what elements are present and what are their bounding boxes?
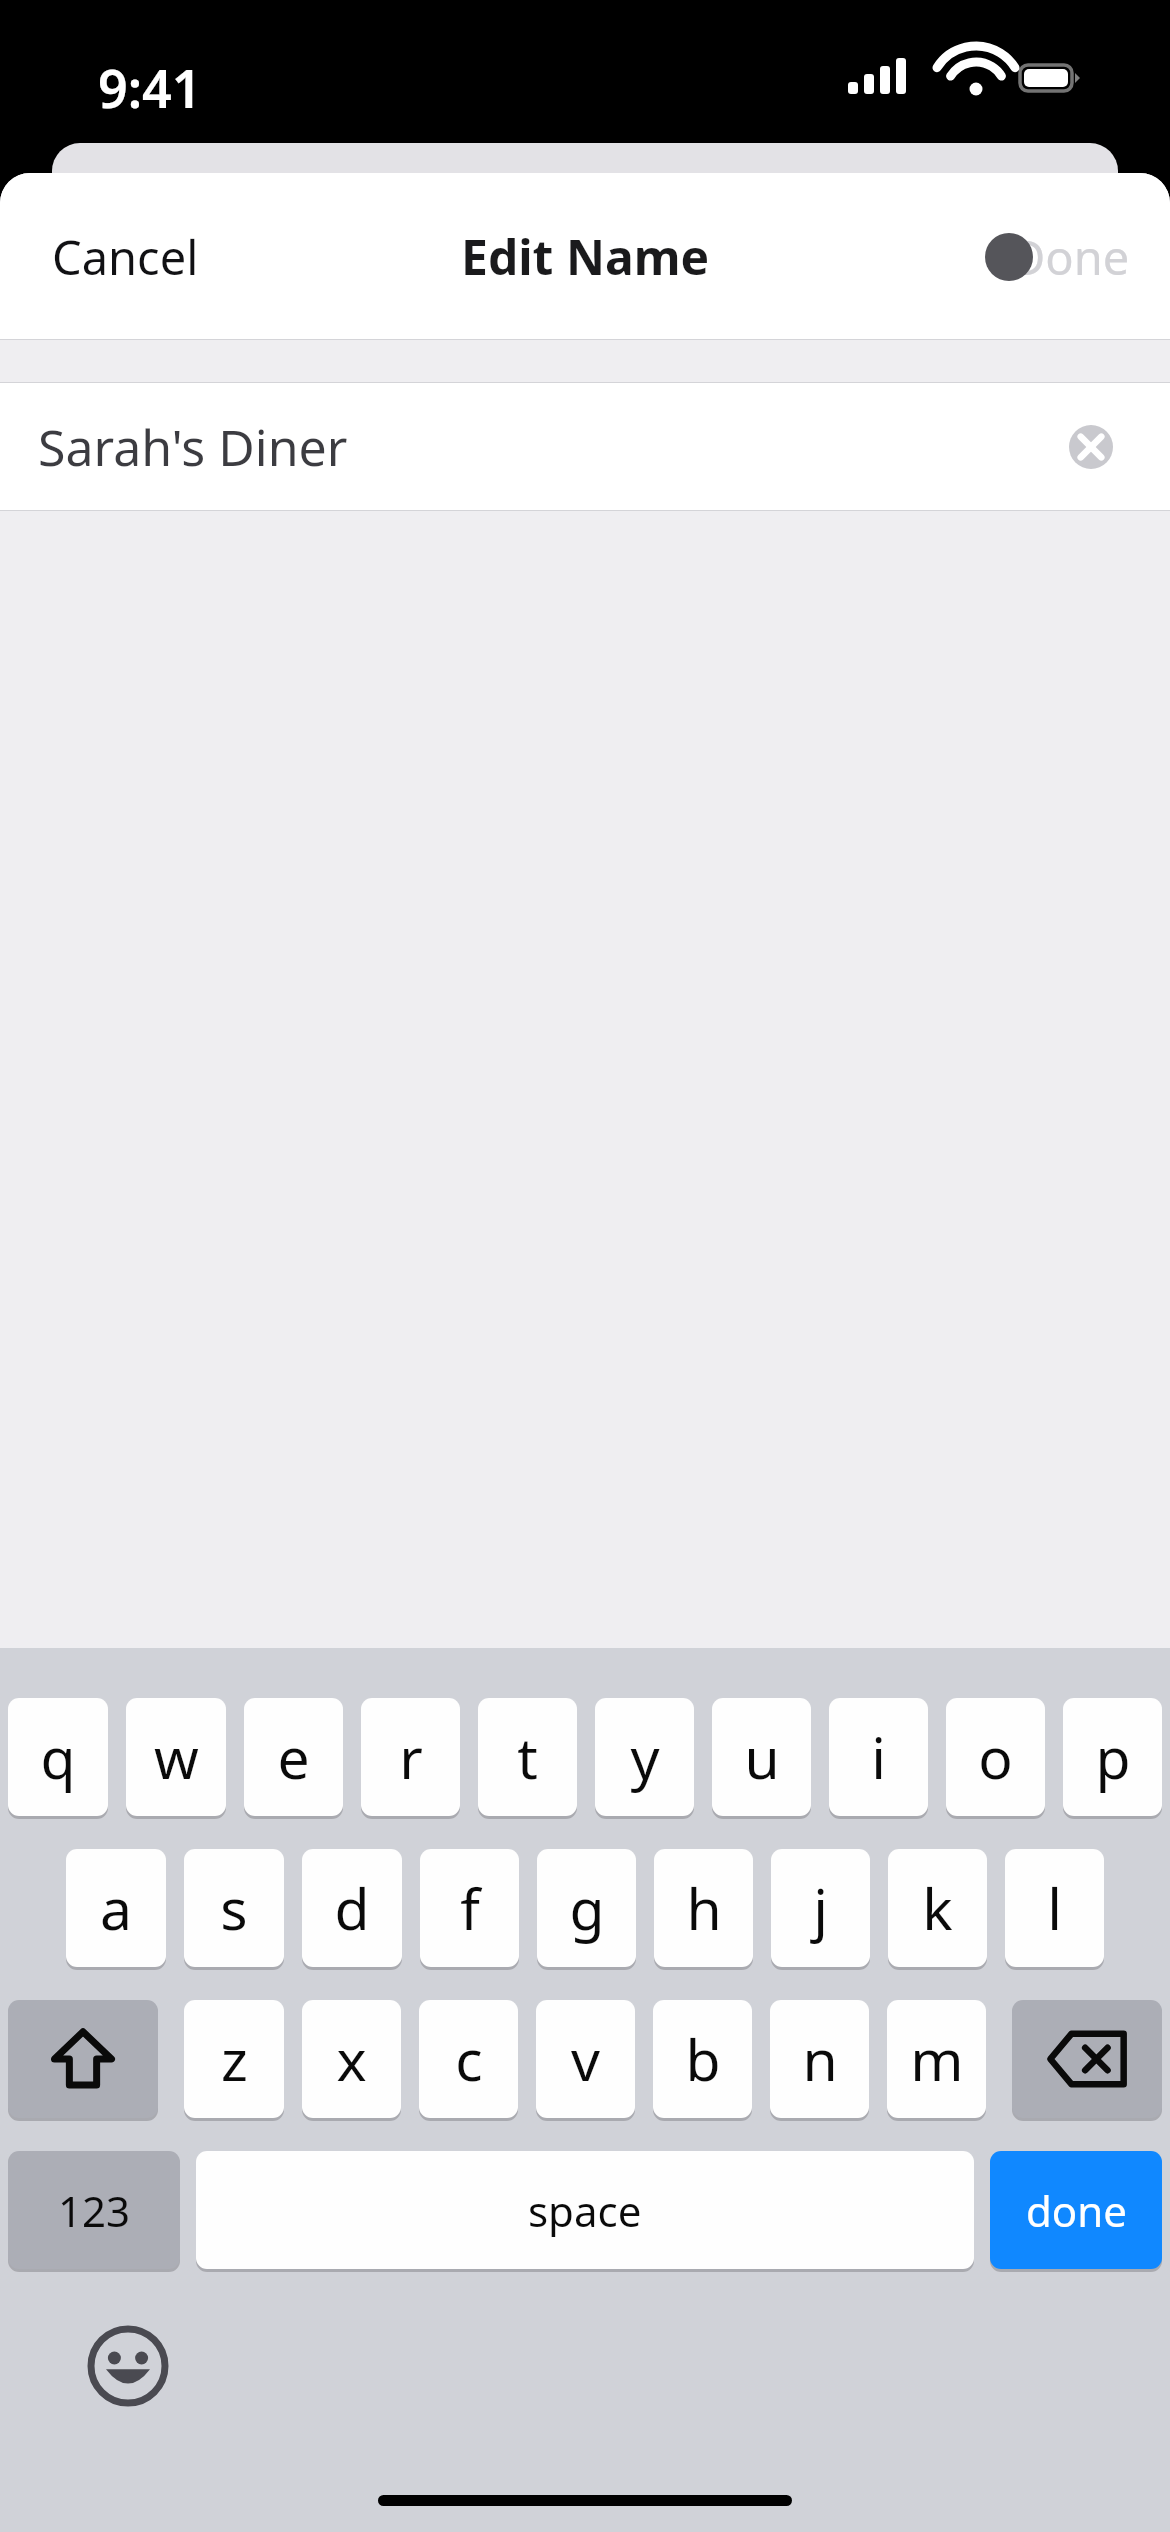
button[interactable]: e bbox=[244, 1698, 343, 1816]
staticText: s bbox=[220, 1869, 248, 1947]
staticText: x bbox=[336, 2020, 367, 2098]
button[interactable]: s bbox=[184, 1849, 284, 1967]
button[interactable]: y bbox=[595, 1698, 694, 1816]
staticText: f bbox=[460, 1869, 480, 1947]
staticText: w bbox=[154, 1718, 199, 1796]
staticText: r bbox=[399, 1718, 423, 1796]
staticText: u bbox=[744, 1718, 780, 1796]
button[interactable]: done bbox=[990, 2151, 1162, 2269]
button[interactable]: p bbox=[1063, 1698, 1162, 1816]
staticText: done bbox=[1026, 2182, 1127, 2239]
staticText: k bbox=[922, 1869, 953, 1947]
staticText: m bbox=[910, 2020, 964, 2098]
button[interactable]: space bbox=[196, 2151, 974, 2269]
staticText: 123 bbox=[58, 2182, 131, 2239]
staticText: o bbox=[978, 1718, 1013, 1796]
button[interactable]: Shift bbox=[8, 2000, 158, 2118]
staticText: a bbox=[100, 1869, 132, 1947]
button[interactable]: f bbox=[420, 1849, 519, 1967]
button[interactable]: w bbox=[126, 1698, 226, 1816]
button[interactable]: h bbox=[654, 1849, 753, 1967]
staticText: d bbox=[334, 1869, 370, 1947]
staticText: g bbox=[569, 1869, 605, 1947]
button[interactable]: i bbox=[829, 1698, 928, 1816]
staticText: Sarah's Diner bbox=[38, 413, 348, 481]
staticText: y bbox=[630, 1718, 660, 1796]
button[interactable]: Cancel bbox=[20, 203, 231, 311]
button[interactable]: u bbox=[712, 1698, 811, 1816]
staticText: e bbox=[277, 1718, 310, 1796]
button[interactable]: j bbox=[771, 1849, 870, 1967]
button[interactable]: m bbox=[887, 2000, 986, 2118]
staticText: i bbox=[871, 1718, 886, 1796]
staticText: n bbox=[802, 2020, 838, 2098]
button[interactable]: g bbox=[537, 1849, 636, 1967]
button[interactable]: v bbox=[536, 2000, 635, 2118]
staticText: v bbox=[571, 2020, 600, 2098]
staticText: b bbox=[685, 2020, 721, 2098]
button[interactable]: r bbox=[361, 1698, 460, 1816]
button[interactable]: l bbox=[1005, 1849, 1104, 1967]
button[interactable]: x bbox=[302, 2000, 401, 2118]
button[interactable]: 123 bbox=[8, 2151, 180, 2269]
staticText: l bbox=[1047, 1869, 1062, 1947]
staticText: space bbox=[528, 2182, 642, 2239]
button[interactable]: d bbox=[302, 1849, 402, 1967]
button[interactable]: n bbox=[770, 2000, 869, 2118]
button[interactable]: q bbox=[8, 1698, 108, 1816]
button[interactable]: Backspace bbox=[1012, 2000, 1162, 2118]
button[interactable]: a bbox=[66, 1849, 166, 1967]
staticText: t bbox=[517, 1718, 538, 1796]
other: Saving bbox=[985, 233, 1033, 281]
staticText: Edit Name bbox=[461, 224, 710, 289]
staticText: 9:41 bbox=[98, 52, 202, 123]
button[interactable]: Clear text bbox=[1069, 425, 1113, 469]
staticText: q bbox=[40, 1718, 76, 1796]
button[interactable]: Done bbox=[989, 203, 1152, 311]
staticText: j bbox=[813, 1869, 828, 1947]
button[interactable]: c bbox=[419, 2000, 518, 2118]
staticText: z bbox=[221, 2020, 248, 2098]
button[interactable]: Emoji keyboard bbox=[82, 2320, 174, 2412]
staticText: Cancel bbox=[52, 225, 199, 289]
button[interactable]: Sarah's Diner bbox=[0, 382, 1170, 511]
button[interactable]: b bbox=[653, 2000, 752, 2118]
staticText: Done bbox=[1011, 225, 1130, 289]
button[interactable]: o bbox=[946, 1698, 1045, 1816]
staticText: p bbox=[1095, 1718, 1131, 1796]
button[interactable]: z bbox=[184, 2000, 284, 2118]
button[interactable]: k bbox=[888, 1849, 987, 1967]
staticText: c bbox=[455, 2020, 483, 2098]
button[interactable]: t bbox=[478, 1698, 577, 1816]
staticText: h bbox=[686, 1869, 722, 1947]
